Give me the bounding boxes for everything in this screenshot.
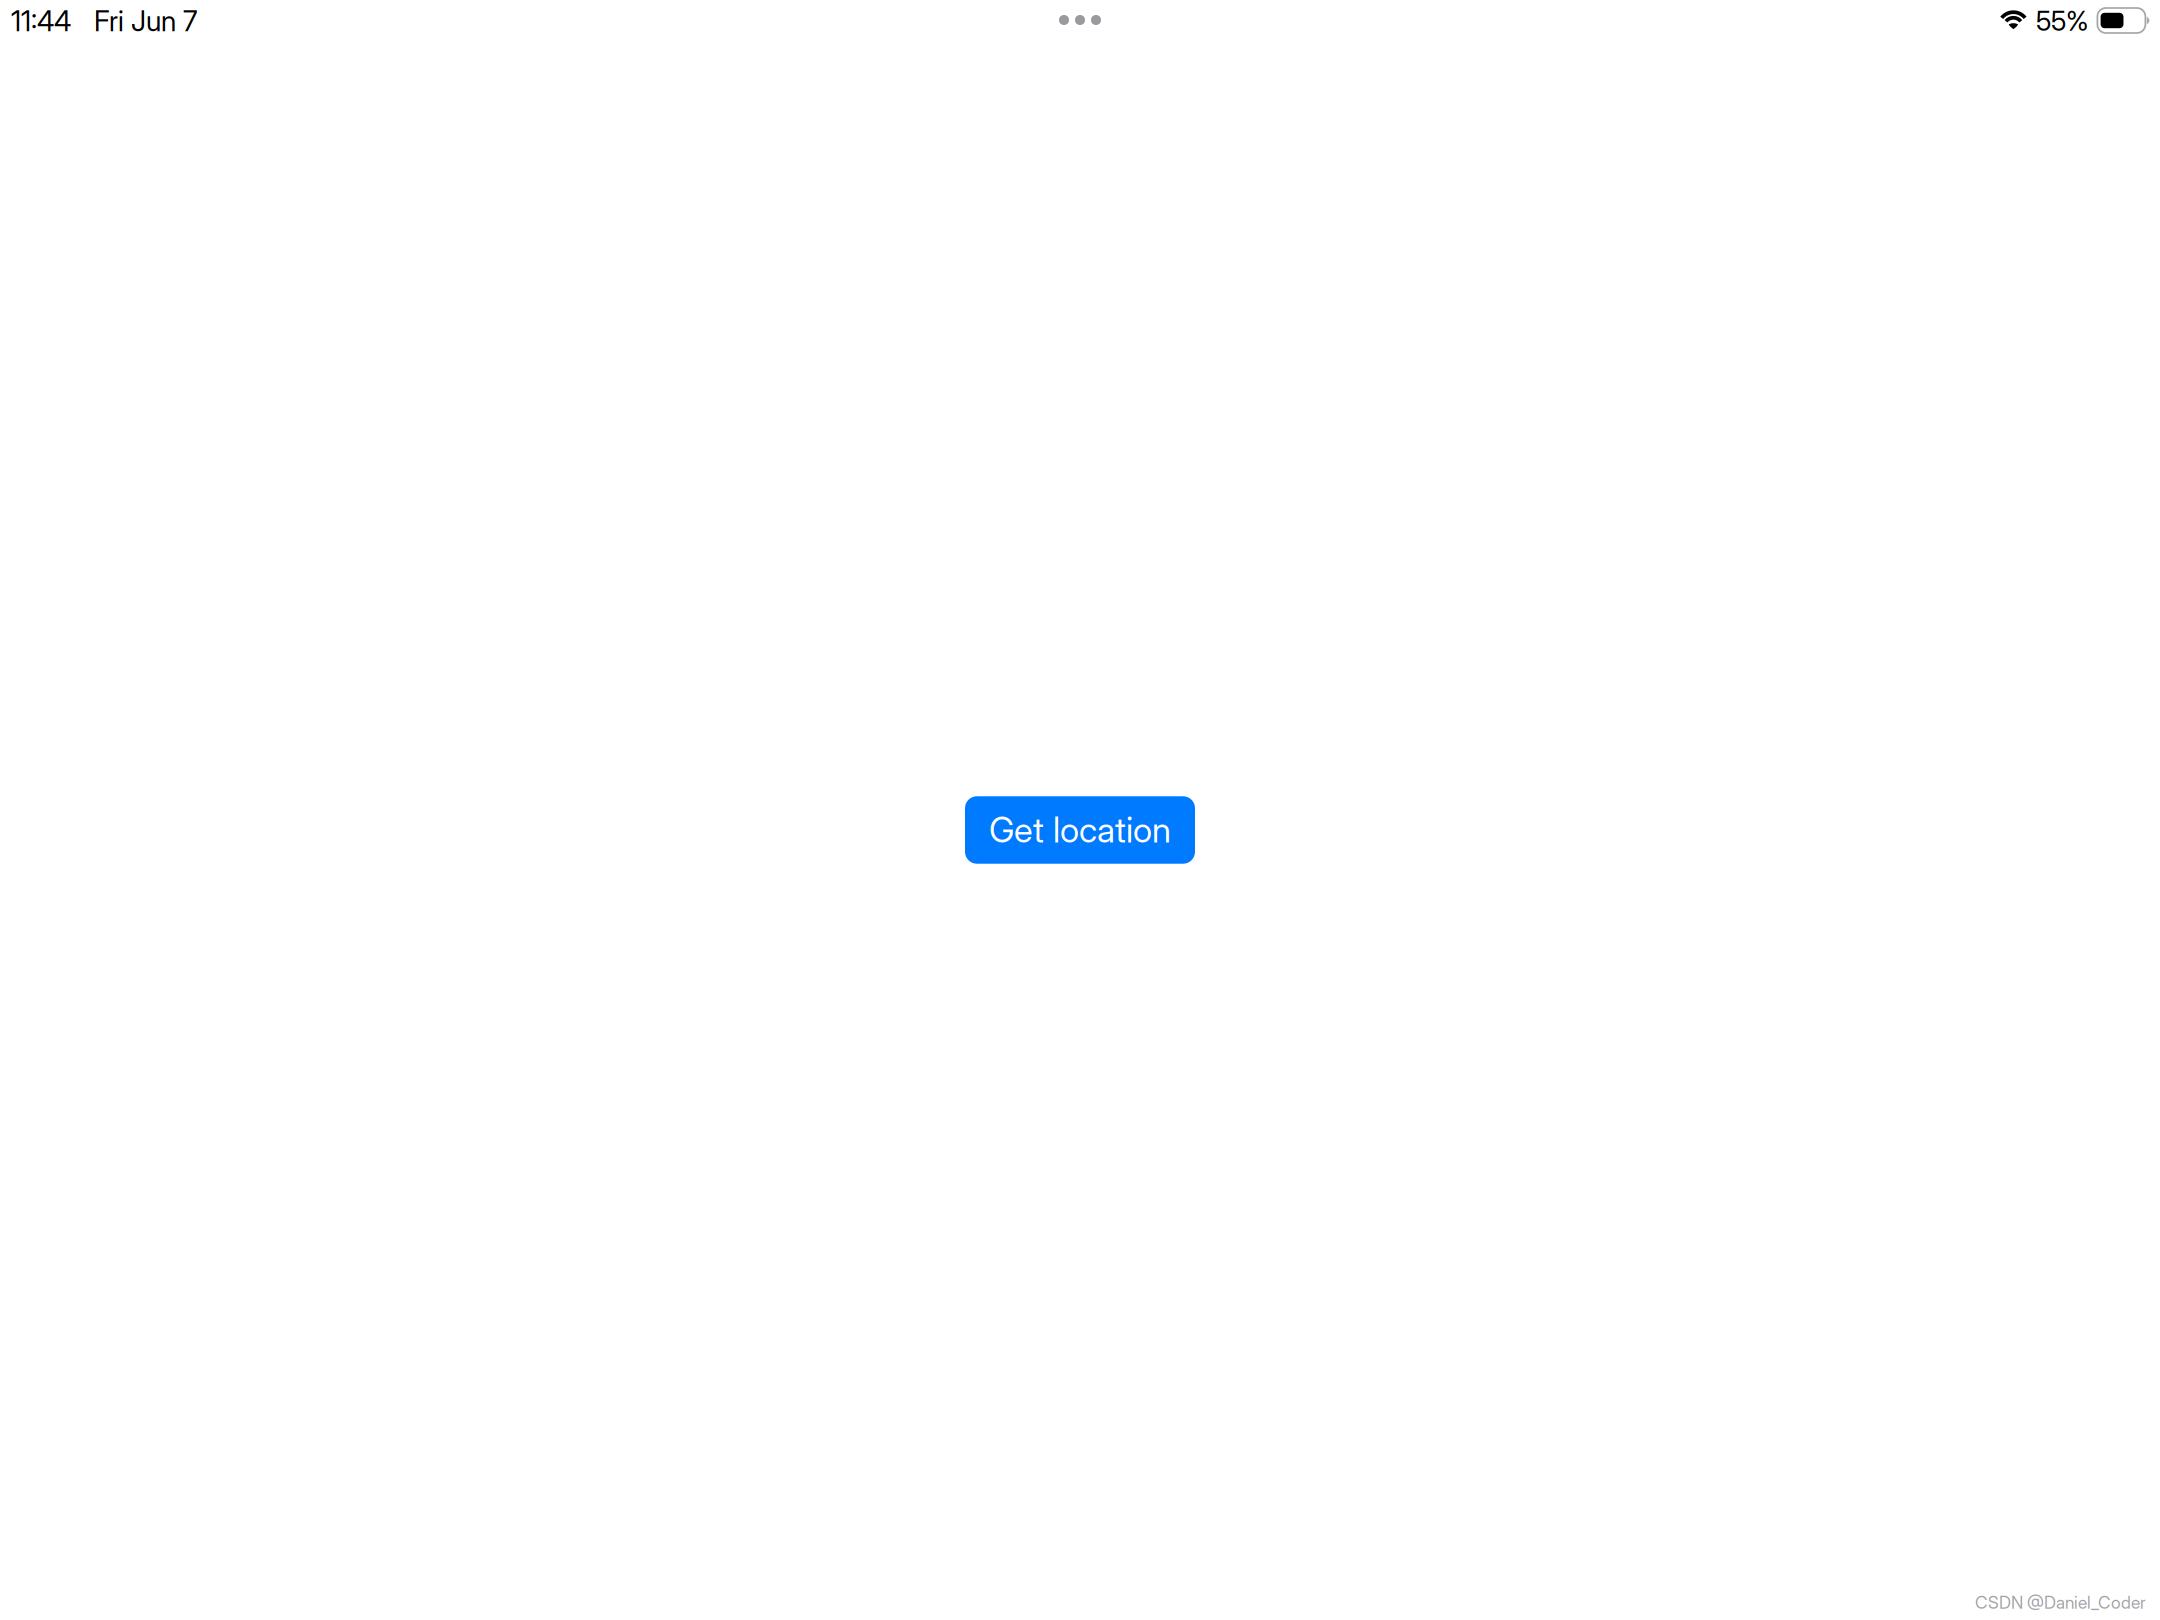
staticText: Fri Jun 7 bbox=[94, 4, 197, 38]
staticText: Get location bbox=[989, 809, 1171, 851]
staticText: CSDN @Daniel_Coder bbox=[1975, 1592, 2146, 1613]
staticText: 55% bbox=[2036, 5, 2089, 37]
button[interactable]: Get location bbox=[965, 796, 1195, 864]
staticText: 11:44 bbox=[11, 4, 71, 38]
